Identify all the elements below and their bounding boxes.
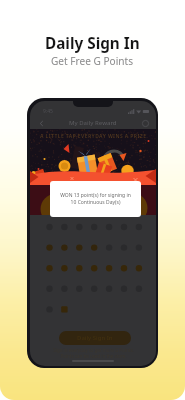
staticText: My Daily Reward bbox=[69, 119, 117, 127]
button[interactable]: Help bbox=[139, 117, 151, 129]
button[interactable]: Daily Sign In bbox=[59, 331, 131, 345]
button[interactable]: Back bbox=[35, 117, 47, 129]
staticText: A LITTLE TAP EVERYDAY WINS A PRIZE bbox=[40, 133, 147, 140]
staticText: Daily Sign In bbox=[77, 334, 113, 342]
staticText: Daily Sign In bbox=[45, 33, 140, 54]
staticText: WON 13 point(s) for signing in 10 Contin… bbox=[57, 192, 134, 206]
staticText: 9:45 bbox=[43, 108, 53, 115]
staticText: Get Free G Points bbox=[51, 54, 134, 68]
